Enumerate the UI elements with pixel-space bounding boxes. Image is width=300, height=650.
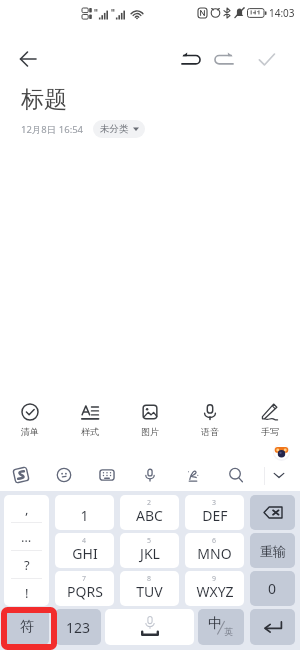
button[interactable]: Done xyxy=(250,43,282,75)
staticText: 标题 xyxy=(21,85,67,114)
button[interactable]: 清单 xyxy=(0,395,60,453)
staticText: 2 xyxy=(147,498,152,508)
button[interactable]: 8 xyxy=(120,571,179,606)
staticText: 符 xyxy=(20,618,34,636)
button[interactable]: 样式 xyxy=(60,395,120,453)
staticText: 14:03 xyxy=(269,6,295,20)
staticText: 重输 xyxy=(260,543,286,559)
staticText: 样式 xyxy=(81,426,99,437)
staticText: DEF xyxy=(202,506,228,525)
button[interactable]: 5 xyxy=(120,533,179,568)
button[interactable]: Enter xyxy=(250,609,295,645)
button[interactable]: 符 xyxy=(4,609,49,645)
button[interactable]: Redo xyxy=(208,43,240,75)
button[interactable]: 0 xyxy=(250,571,295,606)
button[interactable]: 手写 xyxy=(240,395,300,453)
button[interactable]: 4 xyxy=(55,533,114,568)
staticText: 4 xyxy=(82,536,87,546)
button[interactable]: Undo xyxy=(175,43,207,75)
button[interactable]: 1 xyxy=(55,495,114,530)
button[interactable]: 3 xyxy=(185,495,244,530)
staticText: 6 xyxy=(212,536,217,546)
staticText: … xyxy=(21,528,32,546)
button[interactable]: … xyxy=(4,523,49,550)
button[interactable]: Handwriting xyxy=(171,459,214,491)
button[interactable]: Keyboard xyxy=(85,459,128,491)
staticText: 0 xyxy=(268,579,277,598)
staticText: 清单 xyxy=(21,426,39,437)
staticText: 5 xyxy=(147,536,152,546)
button[interactable]: Space xyxy=(105,609,194,645)
button[interactable]: 中 xyxy=(198,609,244,645)
button[interactable]: Back xyxy=(11,42,45,76)
staticText: 语音 xyxy=(201,426,219,437)
button[interactable]: Search xyxy=(214,459,257,491)
button[interactable]: ! xyxy=(4,579,49,606)
staticText: 7 xyxy=(82,574,87,584)
staticText: JKL xyxy=(140,544,160,563)
staticText: TUV xyxy=(136,582,163,601)
staticText: ABC xyxy=(136,506,163,525)
button[interactable]: 图片 xyxy=(120,395,180,453)
staticText: ! xyxy=(25,584,29,602)
button[interactable]: ? xyxy=(4,551,49,578)
staticText: 手写 xyxy=(261,426,279,437)
button[interactable]: 9 xyxy=(185,571,244,606)
button[interactable]: Emoji xyxy=(42,459,85,491)
staticText: 中 xyxy=(208,615,222,633)
staticText: , xyxy=(25,500,29,518)
button[interactable]: Voice xyxy=(128,459,171,491)
staticText: 12月8日 16:54 xyxy=(21,123,84,136)
staticText: ? xyxy=(24,556,30,574)
button[interactable]: Sogou xyxy=(0,459,42,491)
button[interactable]: 123 xyxy=(55,609,101,645)
staticText: 8 xyxy=(147,574,152,584)
button[interactable]: 2 xyxy=(120,495,179,530)
button[interactable]: 6 xyxy=(185,533,244,568)
button[interactable]: 语音 xyxy=(180,395,240,453)
staticText: GHI xyxy=(72,544,98,563)
staticText: 未分类 xyxy=(100,123,129,135)
button[interactable]: 未分类 xyxy=(93,120,145,138)
button[interactable]: Backspace xyxy=(250,495,295,530)
button[interactable]: 7 xyxy=(55,571,114,606)
button[interactable]: 重输 xyxy=(250,533,295,568)
staticText: 9 xyxy=(212,574,217,584)
staticText: WXYZ xyxy=(196,582,234,601)
button[interactable]: , xyxy=(4,495,49,522)
staticText: 123 xyxy=(66,618,91,637)
staticText: 图片 xyxy=(141,426,159,437)
button[interactable]: Hide keyboard xyxy=(257,459,300,491)
staticText: PQRS xyxy=(67,582,103,601)
staticText: MNO xyxy=(197,544,232,563)
staticText: 3 xyxy=(212,498,217,508)
staticText: 1 xyxy=(80,506,89,525)
staticText: 英 xyxy=(224,626,233,637)
